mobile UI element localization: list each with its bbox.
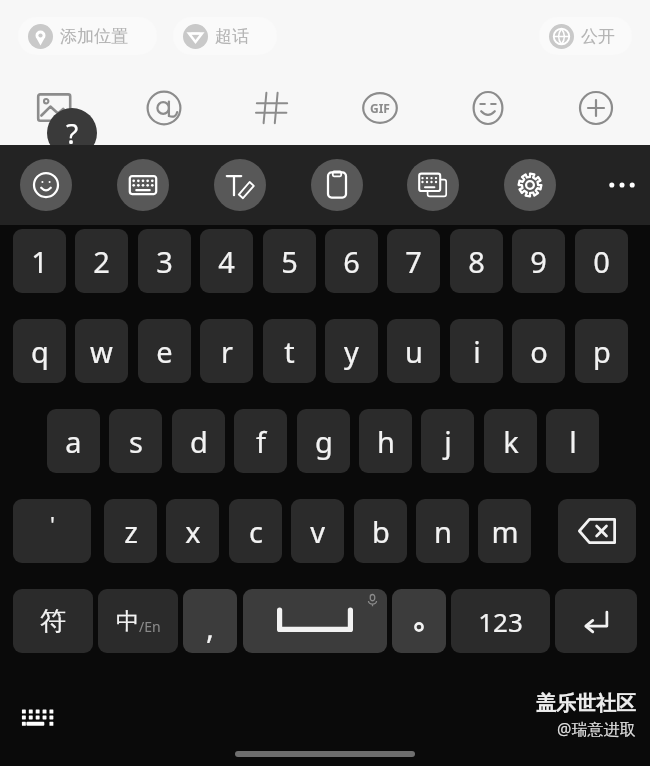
button[interactable]: m: [478, 499, 531, 563]
button[interactable]: 123: [451, 589, 550, 653]
button[interactable]: Mention: [109, 71, 218, 145]
staticText: 9: [530, 242, 547, 281]
button[interactable]: More options: [596, 159, 648, 211]
button[interactable]: b: [354, 499, 407, 563]
button[interactable]: c: [229, 499, 282, 563]
button[interactable]: g: [297, 409, 350, 473]
button[interactable]: 超话: [173, 17, 277, 55]
staticText: q: [31, 332, 49, 371]
button[interactable]: Emoji: [20, 159, 72, 211]
button[interactable]: More: [542, 71, 650, 145]
button[interactable]: e: [138, 319, 191, 383]
staticText: p: [593, 332, 611, 371]
button[interactable]: ,: [183, 589, 237, 653]
staticText: 中: [116, 607, 139, 636]
staticText: 公开: [581, 26, 615, 47]
button[interactable]: Settings: [504, 159, 556, 211]
button[interactable]: 添加位置: [18, 17, 157, 55]
staticText: c: [249, 512, 263, 551]
button[interactable]: Enter: [555, 589, 637, 653]
button[interactable]: Help: [47, 108, 97, 158]
button[interactable]: z: [104, 499, 157, 563]
button[interactable]: y: [325, 319, 378, 383]
button[interactable]: ': [13, 499, 91, 563]
button[interactable]: q: [13, 319, 66, 383]
staticText: 5: [281, 242, 298, 281]
button[interactable]: [392, 589, 446, 653]
button[interactable]: Space: [243, 589, 387, 653]
staticText: 7: [405, 242, 422, 281]
button[interactable]: 中: [98, 589, 178, 653]
staticText: 盖乐世社区: [536, 691, 636, 716]
staticText: a: [65, 422, 82, 461]
staticText: 3: [156, 242, 173, 281]
button[interactable]: Backspace: [558, 499, 636, 563]
staticText: y: [344, 332, 359, 371]
button[interactable]: 符: [13, 589, 93, 653]
staticText: b: [372, 512, 390, 551]
button[interactable]: 6: [325, 229, 378, 293]
staticText: m: [491, 512, 519, 551]
button[interactable]: l: [546, 409, 599, 473]
button[interactable]: 8: [450, 229, 503, 293]
button[interactable]: d: [172, 409, 225, 473]
button[interactable]: Keyboard layout: [117, 159, 169, 211]
button[interactable]: Hide keyboard: [14, 700, 58, 734]
button[interactable]: u: [387, 319, 440, 383]
button[interactable]: 2: [75, 229, 128, 293]
button[interactable]: v: [291, 499, 344, 563]
staticText: j: [444, 422, 452, 461]
button[interactable]: i: [450, 319, 503, 383]
staticText: 0: [593, 242, 610, 281]
button[interactable]: s: [109, 409, 162, 473]
staticText: l: [569, 422, 577, 461]
button[interactable]: GIF: [326, 71, 434, 145]
button[interactable]: p: [575, 319, 628, 383]
staticText: v: [310, 512, 325, 551]
button[interactable]: a: [47, 409, 100, 473]
button[interactable]: w: [75, 319, 128, 383]
staticText: e: [156, 332, 173, 371]
button[interactable]: Themes: [407, 159, 459, 211]
button[interactable]: Handwriting: [214, 159, 266, 211]
staticText: r: [221, 332, 233, 371]
staticText: i: [473, 332, 481, 371]
staticText: 符: [40, 605, 66, 638]
staticText: 超话: [215, 26, 249, 47]
button[interactable]: Clipboard: [311, 159, 363, 211]
button[interactable]: 9: [512, 229, 565, 293]
staticText: u: [405, 332, 423, 371]
button[interactable]: o: [512, 319, 565, 383]
button[interactable]: r: [200, 319, 253, 383]
button[interactable]: t: [263, 319, 316, 383]
button[interactable]: f: [234, 409, 287, 473]
button[interactable]: h: [359, 409, 412, 473]
staticText: /En: [139, 617, 161, 636]
button[interactable]: 3: [138, 229, 191, 293]
button[interactable]: 7: [387, 229, 440, 293]
staticText: n: [434, 512, 452, 551]
button[interactable]: 公开: [539, 17, 632, 55]
button[interactable]: Add image: [0, 71, 109, 145]
staticText: o: [530, 332, 548, 371]
button[interactable]: 5: [263, 229, 316, 293]
staticText: s: [129, 422, 143, 461]
button[interactable]: j: [421, 409, 474, 473]
button[interactable]: 4: [200, 229, 253, 293]
staticText: 6: [343, 242, 360, 281]
staticText: ,: [206, 607, 215, 648]
button[interactable]: 0: [575, 229, 628, 293]
staticText: @瑞意进取: [557, 718, 636, 740]
button[interactable]: n: [416, 499, 469, 563]
button[interactable]: x: [166, 499, 219, 563]
staticText: ': [50, 509, 55, 539]
staticText: 1: [31, 242, 48, 281]
button[interactable]: 1: [13, 229, 66, 293]
button[interactable]: Emoji: [434, 71, 542, 145]
staticText: ?: [66, 114, 79, 152]
staticText: w: [90, 332, 113, 371]
button[interactable]: Hashtag: [218, 71, 326, 145]
staticText: d: [190, 422, 208, 461]
staticText: 8: [468, 242, 485, 281]
button[interactable]: k: [484, 409, 537, 473]
